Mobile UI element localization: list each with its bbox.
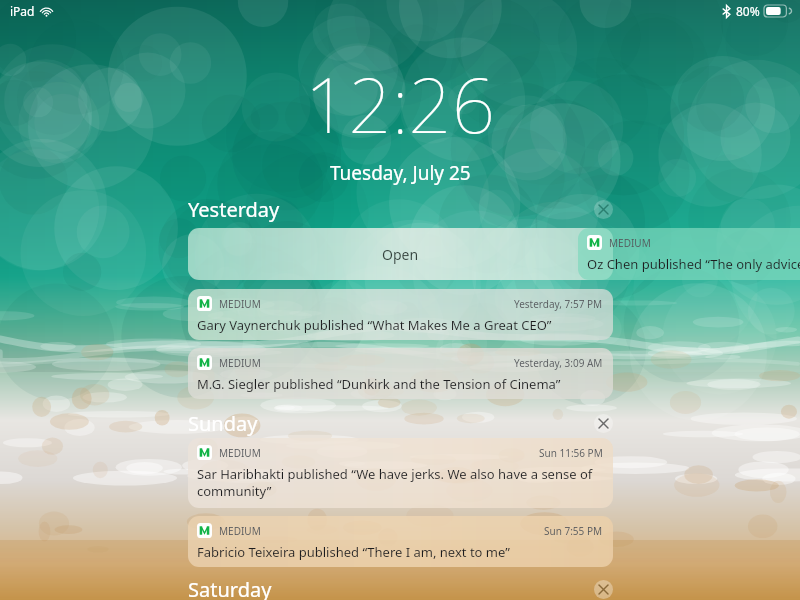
button[interactable]: MEDIUM [188,516,613,567]
button[interactable]: MEDIUM [188,348,613,399]
staticText: Yesterday, 3:09 AM [514,356,603,370]
staticText: MEDIUM [609,236,651,250]
button[interactable]: Clear Sunday notifications [594,414,613,433]
button[interactable]: MEDIUM [188,438,613,508]
staticText: MEDIUM [219,297,261,311]
staticText: Fabricio Teixeira published “There I am,… [197,543,510,561]
staticText: MEDIUM [219,446,261,460]
staticText: Sunday [188,410,258,436]
staticText: Sun 11:56 PM [539,446,603,460]
staticText: Sun 7:55 PM [544,524,603,538]
button[interactable]: Open [188,228,613,280]
button[interactable]: MEDIUM [188,289,613,340]
staticText: 12:26 [305,52,495,156]
staticText: MEDIUM [219,524,261,538]
staticText: Sar Haribhakti published “We have jerks.… [197,465,603,500]
button[interactable]: Clear Yesterday notifications [594,200,613,219]
staticText: MEDIUM [219,356,261,370]
button[interactable]: Clear Saturday notifications [594,580,613,599]
button[interactable]: MEDIUM [578,228,800,280]
staticText: Oz Chen published “The only advice I’d [587,255,800,273]
staticText: Yesterday [188,196,280,222]
staticText: Saturday [188,576,272,600]
staticText: M.G. Siegler published “Dunkirk and the … [197,375,561,393]
staticText: Yesterday, 7:57 PM [514,297,603,311]
staticText: Tuesday, July 25 [330,160,471,186]
staticText: Gary Vaynerchuk published “What Makes Me… [197,316,552,334]
staticText: iPad [10,3,35,19]
staticText: 80% [736,3,760,19]
staticText: Open [382,245,419,264]
